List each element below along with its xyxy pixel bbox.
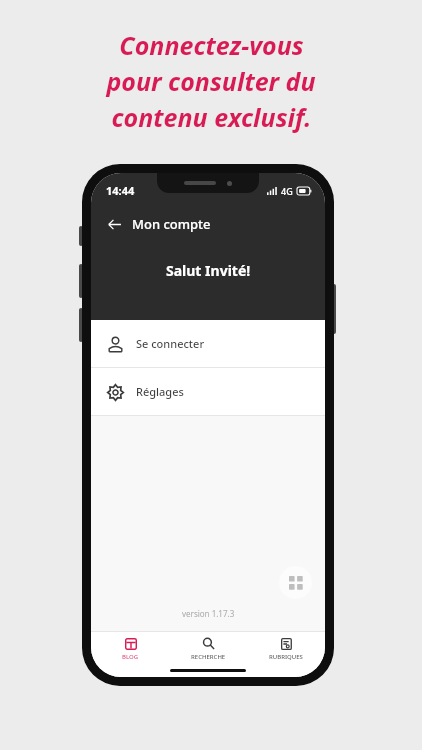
staticText: 4G [281,185,293,197]
button[interactable]: BLOG [91,636,169,677]
button[interactable]: Se connecter [91,320,325,367]
staticText: Connectez-vous [119,28,304,62]
button[interactable]: RECHERCHE [169,636,247,677]
staticText: version 1.17.3 [182,608,235,619]
staticText: Réglages [136,384,184,399]
staticText: RUBRIQUES [269,653,303,661]
button[interactable]: Back [101,211,127,237]
button[interactable]: RUBRIQUES [247,636,325,677]
button[interactable]: Grid menu [279,566,312,599]
staticText: Mon compte [132,215,211,233]
staticText: BLOG [122,653,139,661]
button[interactable]: Réglages [91,368,325,415]
staticText: RECHERCHE [191,653,226,661]
staticText: contenu exclusif. [111,100,312,134]
staticText: 14:44 [106,183,135,198]
staticText: pour consulter du [106,64,316,98]
staticText: Se connecter [136,336,205,351]
staticText: Salut Invité! [166,261,251,280]
